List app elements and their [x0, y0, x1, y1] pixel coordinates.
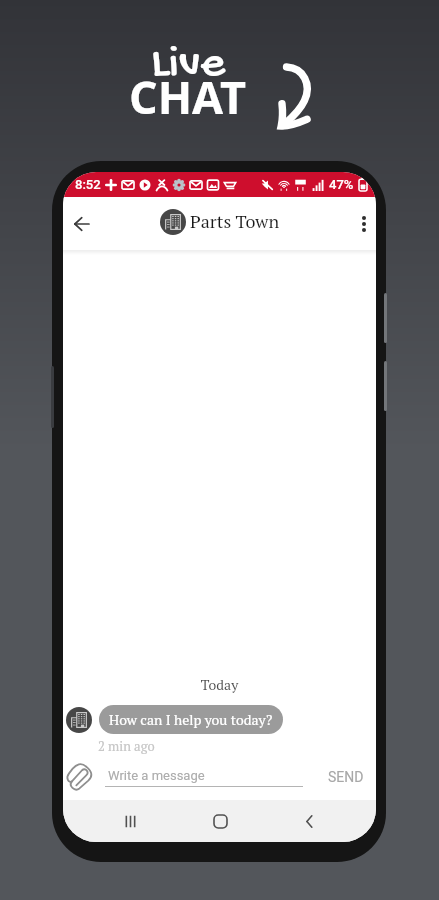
staticText: 8:52: [75, 177, 101, 192]
staticText: Parts Town: [190, 209, 280, 233]
staticText: Live: [151, 37, 225, 94]
button[interactable]: Back: [64, 207, 98, 241]
button[interactable]: Recent apps: [107, 800, 153, 842]
staticText: How can I help you today?: [109, 710, 273, 729]
button[interactable]: SEND: [326, 765, 368, 789]
staticText: Write a message: [108, 768, 205, 783]
staticText: 47%: [329, 177, 354, 192]
staticText: Today: [63, 675, 376, 694]
staticText: 2 min ago: [98, 737, 155, 754]
button[interactable]: More options: [347, 207, 376, 241]
button[interactable]: Home: [197, 800, 243, 842]
staticText: SEND: [328, 769, 364, 785]
button[interactable]: Attach file: [66, 762, 96, 792]
button[interactable]: Back: [286, 800, 332, 842]
staticText: CHAT: [129, 66, 247, 127]
